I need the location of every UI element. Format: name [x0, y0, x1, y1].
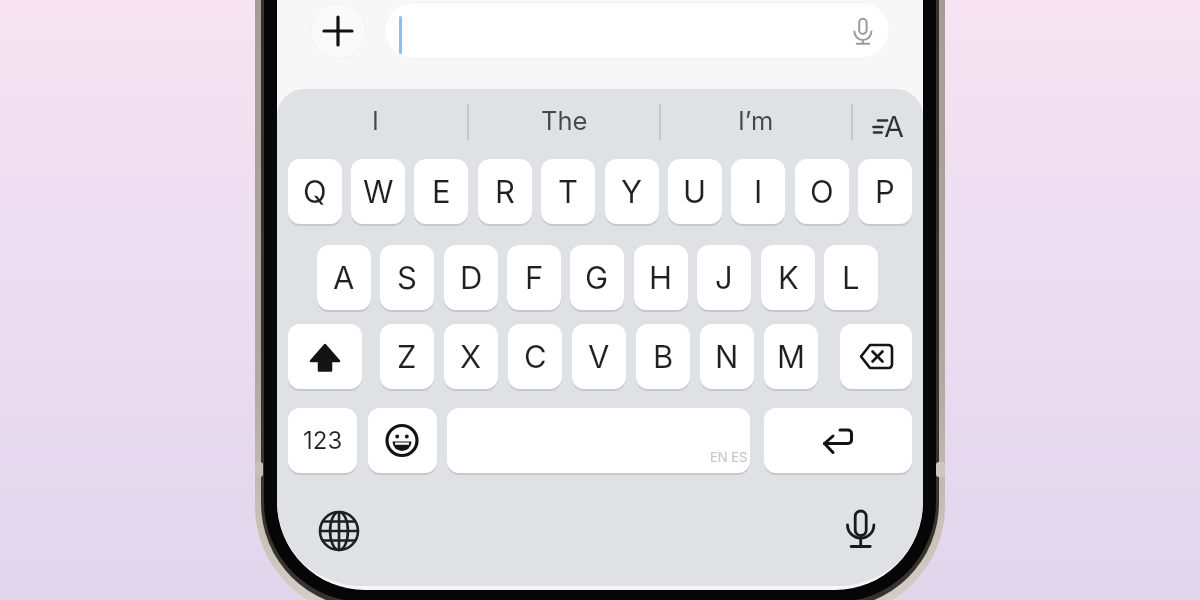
- staticText: B: [653, 338, 674, 376]
- staticText: X: [460, 338, 482, 376]
- staticText: M: [777, 338, 806, 376]
- staticText: L: [842, 259, 860, 297]
- staticText: O: [810, 173, 834, 211]
- staticText: A: [884, 109, 905, 144]
- button[interactable]: [447, 408, 750, 473]
- button[interactable]: I: [731, 159, 785, 224]
- staticText: Z: [397, 338, 417, 376]
- button[interactable]: H: [634, 245, 688, 310]
- staticText: V: [588, 338, 610, 376]
- button[interactable]: [384, 2, 890, 59]
- staticText: E: [432, 173, 451, 211]
- staticText: K: [778, 259, 799, 297]
- staticText: A: [333, 259, 355, 297]
- button[interactable]: G: [570, 245, 624, 310]
- button[interactable]: [314, 506, 364, 556]
- staticText: C: [524, 338, 547, 376]
- button[interactable]: E: [414, 159, 468, 224]
- button[interactable]: F: [507, 245, 561, 310]
- staticText: EN ES: [710, 449, 748, 465]
- staticText: W: [363, 173, 394, 211]
- staticText: D: [460, 259, 483, 297]
- button[interactable]: J: [697, 245, 751, 310]
- button[interactable]: B: [636, 324, 690, 389]
- staticText: F: [525, 259, 544, 297]
- button[interactable]: [764, 408, 912, 473]
- button[interactable]: O: [795, 159, 849, 224]
- button[interactable]: Z: [380, 324, 434, 389]
- staticText: I: [754, 173, 763, 211]
- button[interactable]: X: [444, 324, 498, 389]
- button[interactable]: A: [317, 245, 371, 310]
- button[interactable]: N: [700, 324, 754, 389]
- button[interactable]: U: [668, 159, 722, 224]
- button[interactable]: C: [508, 324, 562, 389]
- staticText: G: [585, 259, 609, 297]
- button[interactable]: K: [761, 245, 815, 310]
- staticText: T: [558, 173, 579, 211]
- button[interactable]: W: [351, 159, 405, 224]
- staticText: The: [541, 105, 588, 136]
- staticText: Y: [621, 173, 643, 211]
- staticText: U: [683, 173, 707, 211]
- button[interactable]: S: [380, 245, 434, 310]
- button[interactable]: [310, 3, 366, 59]
- button[interactable]: V: [572, 324, 626, 389]
- staticText: 123: [303, 426, 343, 455]
- staticText: Q: [303, 173, 327, 211]
- staticText: R: [495, 173, 515, 211]
- button[interactable]: [368, 408, 437, 473]
- staticText: P: [875, 173, 895, 211]
- staticText: I’m: [738, 105, 774, 136]
- button[interactable]: [836, 503, 888, 555]
- staticText: J: [715, 259, 733, 297]
- button[interactable]: R: [478, 159, 532, 224]
- button[interactable]: [288, 324, 362, 389]
- staticText: I: [372, 105, 379, 136]
- button[interactable]: M: [764, 324, 818, 389]
- button[interactable]: Y: [605, 159, 659, 224]
- button[interactable]: Q: [288, 159, 342, 224]
- button[interactable]: D: [444, 245, 498, 310]
- button[interactable]: 123: [288, 408, 357, 473]
- button[interactable]: L: [824, 245, 878, 310]
- staticText: S: [397, 259, 417, 297]
- staticText: N: [715, 338, 739, 376]
- staticText: H: [649, 259, 673, 297]
- button[interactable]: [840, 324, 912, 389]
- button[interactable]: P: [858, 159, 912, 224]
- button[interactable]: T: [541, 159, 595, 224]
